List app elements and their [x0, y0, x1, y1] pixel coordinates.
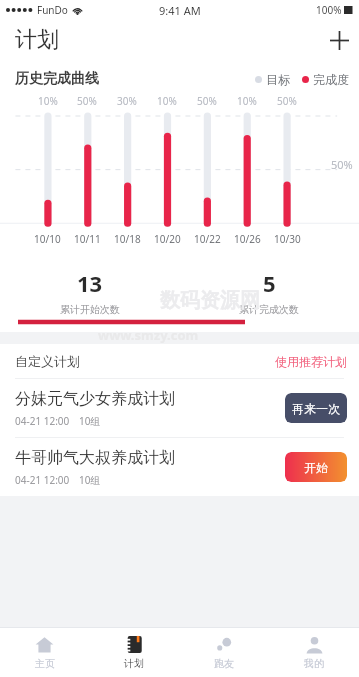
- staticText: 10/11: [74, 232, 101, 246]
- staticText: 自定义计划: [15, 353, 80, 369]
- staticText: FunDo: [37, 3, 68, 17]
- staticText: 主页: [35, 657, 55, 670]
- staticText: 历史完成曲线: [15, 70, 99, 88]
- button[interactable]: 开始: [285, 452, 347, 482]
- staticText: 10%: [237, 94, 257, 108]
- staticText: 50%: [277, 94, 297, 108]
- staticText: 04-21 12:00: [15, 414, 70, 428]
- staticText: 跑友: [214, 657, 234, 670]
- staticText: 13: [77, 268, 103, 298]
- staticText: 10组: [79, 414, 101, 428]
- button[interactable]: 我的: [269, 628, 359, 677]
- staticText: 50%: [77, 94, 97, 108]
- button[interactable]: 主页: [0, 628, 89, 677]
- staticText: 分妹元气少女养成计划: [15, 389, 175, 409]
- button[interactable]: 分妹元气少女养成计划: [0, 379, 359, 437]
- staticText: www.smzy.com: [98, 326, 199, 344]
- button[interactable]: 使用推荐计划: [275, 354, 347, 369]
- staticText: 9:41 AM: [159, 3, 201, 18]
- staticText: 10%: [38, 94, 58, 108]
- button[interactable]: Add plan: [319, 20, 359, 60]
- staticText: 10/30: [274, 232, 301, 246]
- staticText: 再来一次: [292, 401, 340, 416]
- staticText: 10%: [157, 94, 177, 108]
- staticText: 牛哥帅气大叔养成计划: [15, 448, 175, 468]
- button[interactable]: 再来一次: [285, 393, 347, 423]
- staticText: 04-21 12:00: [15, 473, 70, 487]
- button[interactable]: 跑友: [179, 628, 269, 677]
- staticText: 完成度: [313, 72, 349, 87]
- staticText: 计划: [15, 26, 59, 54]
- staticText: 开始: [304, 460, 328, 475]
- staticText: 10/20: [154, 232, 181, 246]
- staticText: 目标: [266, 72, 290, 87]
- button[interactable]: 计划: [89, 628, 179, 677]
- staticText: 5: [263, 268, 276, 298]
- staticText: 计划: [124, 657, 144, 670]
- staticText: 10组: [79, 473, 101, 487]
- staticText: 使用推荐计划: [275, 354, 347, 369]
- staticText: 10/10: [34, 232, 61, 246]
- staticText: 10/26: [234, 232, 261, 246]
- button[interactable]: 牛哥帅气大叔养成计划: [0, 438, 359, 496]
- staticText: 50%: [197, 94, 217, 108]
- staticText: 50%: [331, 157, 353, 172]
- staticText: 数码资源网: [160, 288, 260, 313]
- staticText: 30%: [117, 94, 137, 108]
- staticText: 100%: [316, 3, 342, 17]
- staticText: 累计完成次数: [239, 303, 299, 316]
- staticText: 10/18: [114, 232, 141, 246]
- staticText: 我的: [304, 657, 324, 670]
- staticText: 累计开始次数: [60, 303, 120, 316]
- staticText: 10/22: [194, 232, 221, 246]
